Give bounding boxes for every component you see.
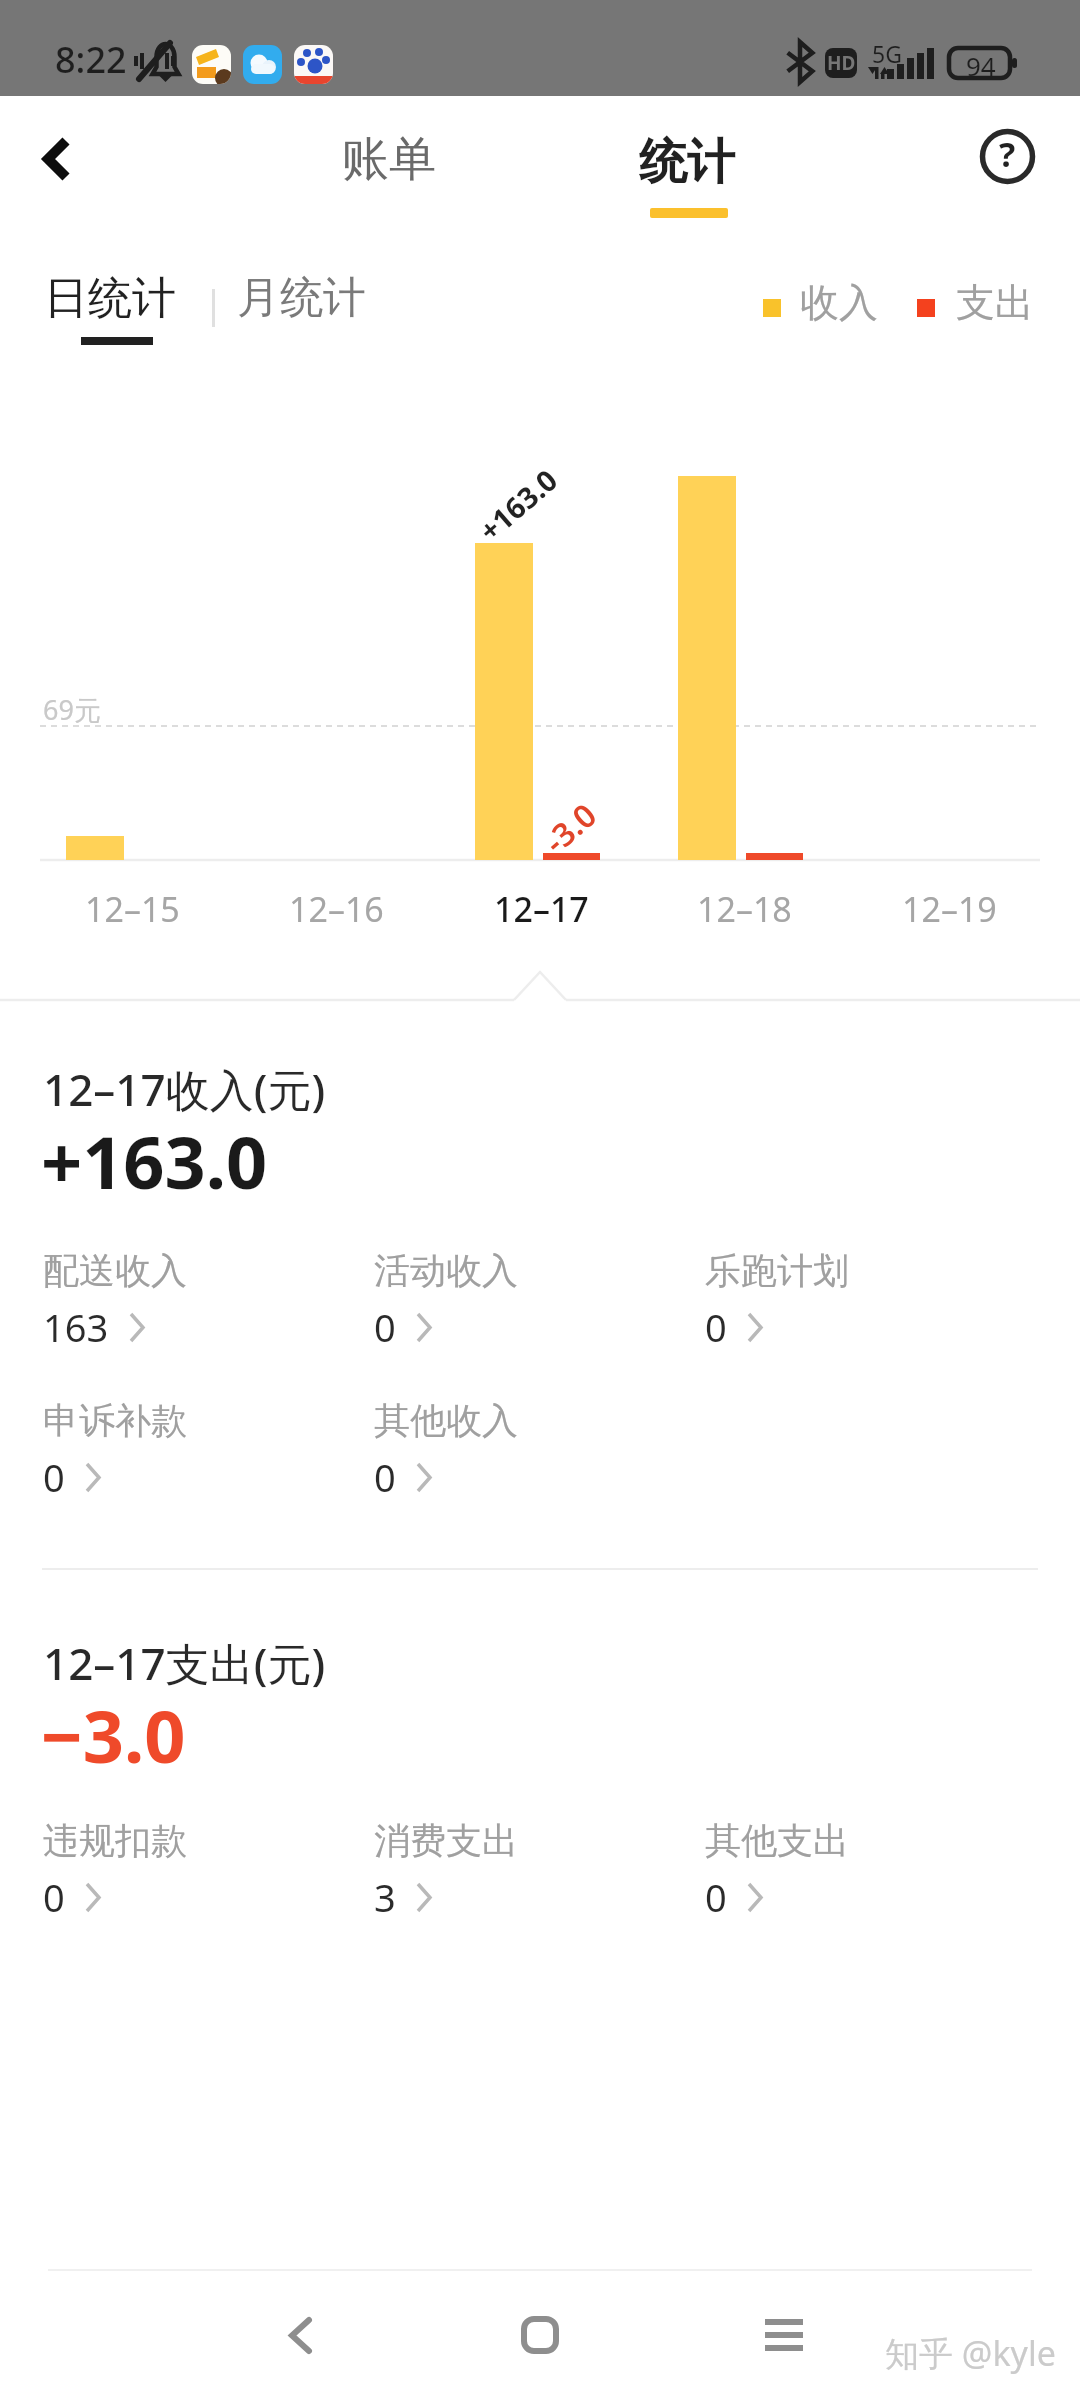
button[interactable]: Home bbox=[485, 2280, 595, 2390]
staticText: 收入 bbox=[800, 278, 878, 327]
button[interactable]: 活动收入 bbox=[374, 1248, 674, 1353]
staticText: 其他收入 bbox=[374, 1398, 518, 1443]
staticText: 0 bbox=[374, 1301, 396, 1353]
button[interactable]: 违规扣款 bbox=[43, 1818, 343, 1923]
button[interactable]: 配送收入 bbox=[43, 1248, 343, 1353]
button[interactable]: 申诉补款 bbox=[43, 1398, 343, 1503]
staticText: -3.0 bbox=[534, 793, 605, 863]
button[interactable]: 月统计 bbox=[237, 261, 383, 331]
staticText: 活动收入 bbox=[374, 1248, 518, 1293]
staticText: 12–17支出(元) bbox=[43, 1633, 326, 1693]
staticText: 12–18 bbox=[697, 886, 792, 932]
button[interactable]: Recent apps bbox=[729, 2280, 839, 2390]
staticText: −3.0 bbox=[41, 1686, 186, 1784]
staticText: 12–16 bbox=[289, 886, 384, 932]
staticText: 申诉补款 bbox=[43, 1398, 187, 1443]
button[interactable]: 消费支出 bbox=[374, 1818, 674, 1923]
button[interactable]: 其他支出 bbox=[705, 1818, 1005, 1923]
button[interactable]: 12–19 bbox=[859, 886, 1039, 970]
button[interactable]: 12–16 bbox=[246, 886, 426, 970]
staticText: +163.0 bbox=[41, 1112, 268, 1210]
button[interactable]: 账单 bbox=[301, 114, 477, 204]
button[interactable]: 日统计 bbox=[40, 261, 202, 361]
staticText: 5G bbox=[872, 38, 902, 69]
staticText: 知乎 @kyle bbox=[885, 2330, 1056, 2376]
staticText: +163.0 bbox=[470, 460, 565, 549]
staticText: 消费支出 bbox=[374, 1818, 518, 1863]
staticText: 统计 bbox=[639, 132, 735, 192]
staticText: 3 bbox=[374, 1871, 396, 1923]
staticText: 94 bbox=[966, 48, 996, 83]
staticText: 8:22 bbox=[55, 35, 127, 84]
button[interactable]: 其他收入 bbox=[374, 1398, 674, 1503]
staticText: 日统计 bbox=[44, 271, 176, 326]
staticText: 69元 bbox=[43, 691, 101, 728]
staticText: 12–19 bbox=[902, 886, 997, 932]
staticText: 0 bbox=[374, 1451, 396, 1503]
staticText: 163 bbox=[43, 1301, 109, 1353]
staticText: 违规扣款 bbox=[43, 1818, 187, 1863]
staticText: HD bbox=[827, 50, 856, 76]
staticText: 12–15 bbox=[85, 886, 180, 932]
button[interactable]: 12–15 bbox=[42, 886, 222, 970]
staticText: 12–17 bbox=[494, 886, 589, 932]
staticText: 乐跑计划 bbox=[705, 1248, 849, 1293]
button[interactable]: Back bbox=[16, 118, 98, 200]
staticText: 0 bbox=[43, 1871, 65, 1923]
staticText: 月统计 bbox=[237, 271, 366, 325]
staticText: ? bbox=[999, 131, 1016, 177]
staticText: 0 bbox=[43, 1451, 65, 1503]
staticText: 12–17收入(元) bbox=[43, 1059, 326, 1119]
staticText: 其他支出 bbox=[705, 1818, 849, 1863]
button[interactable]: Help bbox=[967, 116, 1047, 196]
staticText: 支出 bbox=[956, 278, 1034, 327]
button[interactable]: 12–17 bbox=[451, 886, 631, 970]
staticText: 0 bbox=[705, 1301, 727, 1353]
button[interactable]: 12–18 bbox=[654, 886, 834, 970]
button[interactable]: Back bbox=[245, 2280, 355, 2390]
staticText: 账单 bbox=[342, 130, 436, 189]
staticText: 配送收入 bbox=[43, 1248, 187, 1293]
button[interactable]: 乐跑计划 bbox=[705, 1248, 1005, 1353]
button[interactable]: 统计 bbox=[599, 104, 775, 220]
staticText: 0 bbox=[705, 1871, 727, 1923]
